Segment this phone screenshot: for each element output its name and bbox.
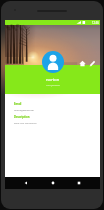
staticText: 12:36 bbox=[92, 21, 99, 25]
button[interactable]: Recents bbox=[74, 178, 84, 188]
button[interactable]: Back bbox=[21, 178, 31, 188]
staticText: norton bbox=[46, 77, 60, 83]
staticText: norton@gmail.com bbox=[14, 109, 34, 112]
button[interactable]: Home bbox=[48, 178, 58, 188]
button[interactable]: Home bbox=[79, 60, 86, 67]
staticText: norton@gmail.com bbox=[46, 84, 60, 86]
staticText: Description bbox=[14, 115, 30, 119]
button[interactable]: Edit bbox=[89, 60, 96, 67]
staticText: write your description bbox=[14, 122, 37, 125]
staticText: Email bbox=[14, 102, 22, 106]
